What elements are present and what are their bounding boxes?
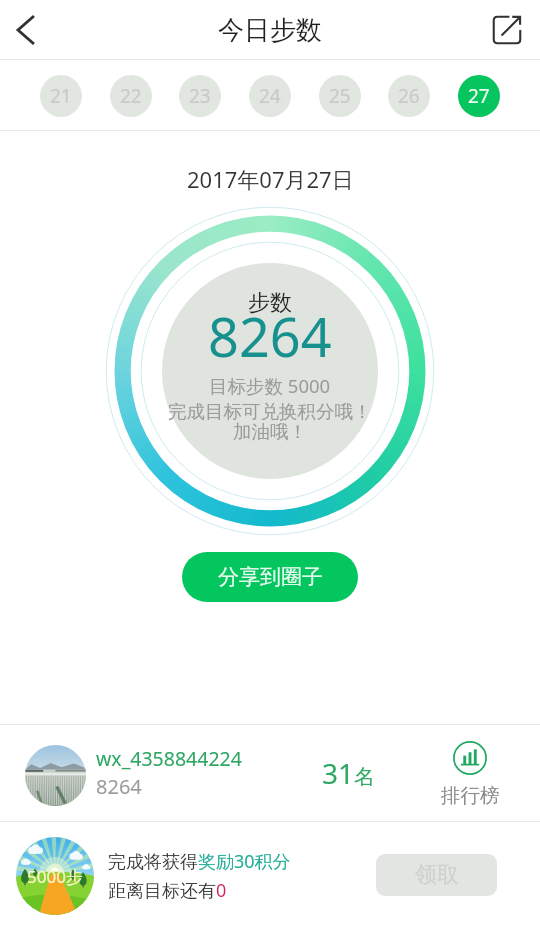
staticText: wx_4358844224 xyxy=(96,745,242,772)
staticText: 完成目标可兑换积分哦！ xyxy=(168,400,372,423)
staticText: 加油哦！ xyxy=(233,420,307,443)
staticText: 25 xyxy=(329,83,351,109)
staticText: 目标步数 5000 xyxy=(209,373,331,398)
button[interactable]: 26 xyxy=(388,75,430,117)
staticText: 排行榜 xyxy=(441,783,500,808)
staticText: 22 xyxy=(120,83,142,109)
staticText: 21 xyxy=(50,83,72,109)
staticText: 领取 xyxy=(415,861,459,889)
button[interactable]: 21 xyxy=(40,75,82,117)
staticText: 27 xyxy=(468,83,490,109)
button[interactable]: 22 xyxy=(110,75,152,117)
button[interactable]: 分享到圈子 xyxy=(182,552,358,602)
button[interactable]: 排行榜 xyxy=(437,734,503,814)
staticText: 8264 xyxy=(208,299,332,373)
button[interactable]: Back xyxy=(0,4,52,56)
staticText: 今日步数 xyxy=(218,14,322,47)
staticText: 5000步 xyxy=(27,865,83,888)
staticText: 23 xyxy=(189,83,211,109)
button[interactable]: 27 xyxy=(458,75,500,117)
button[interactable]: 领取 xyxy=(376,854,497,896)
staticText: 距离目标还有0 xyxy=(108,878,227,903)
button[interactable]: 23 xyxy=(179,75,221,117)
button[interactable]: 25 xyxy=(319,75,361,117)
staticText: 8264 xyxy=(96,773,142,800)
button[interactable]: Share xyxy=(483,6,531,54)
staticText: 分享到圈子 xyxy=(218,564,323,590)
staticText: 31名 xyxy=(322,754,376,792)
staticText: 26 xyxy=(398,83,420,109)
staticText: 完成将获得奖励30积分 xyxy=(108,849,291,874)
staticText: 24 xyxy=(259,83,281,109)
button[interactable]: 24 xyxy=(249,75,291,117)
staticText: 步数 xyxy=(248,289,292,317)
staticText: 2017年07月27日 xyxy=(187,164,354,194)
